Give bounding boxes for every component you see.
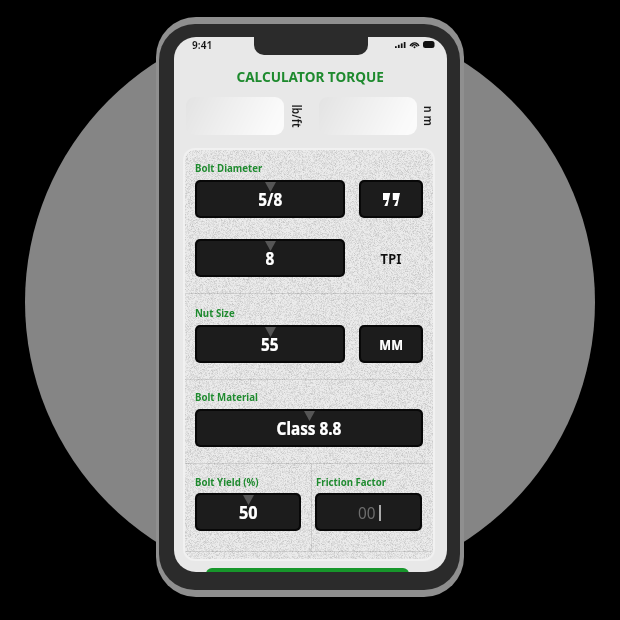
staticText: Bolt Yield (%) [195,474,259,489]
button[interactable]: 00 [315,493,422,531]
staticText: Bolt Diameter [195,160,263,175]
staticText: n m [420,106,436,126]
button[interactable]: Calculate [206,568,409,572]
staticText: 8 [265,247,274,270]
staticText: 50 [239,500,258,525]
button[interactable]: 8 [195,239,345,277]
button[interactable]: Torque value input [186,97,284,135]
button[interactable]: MM [359,325,423,363]
staticText: CALCULATOR TORQUE [236,66,384,86]
staticText: 00 [358,501,376,524]
staticText: 9:41 [192,37,212,52]
button[interactable]: Class 8.8 [195,409,423,447]
staticText: Nut Size [195,305,235,320]
button[interactable]: Torque value input [319,97,417,135]
button[interactable] [359,180,423,218]
button[interactable]: 50 [195,493,301,531]
staticText: lb/ft [287,104,303,128]
staticText: TPI [380,248,402,268]
staticText: Friction Factor [316,474,386,489]
staticText: Bolt Material [195,389,258,404]
button[interactable]: 55 [195,325,345,363]
staticText: Class 8.8 [277,417,341,440]
button[interactable]: 5/8 [195,180,345,218]
staticText: MM [379,335,404,354]
staticText: 5/8 [258,188,283,211]
staticText: 55 [261,333,279,356]
